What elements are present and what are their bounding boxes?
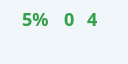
- staticText: 4: [87, 7, 98, 32]
- staticText: 0: [64, 7, 75, 32]
- staticText: 5%: [22, 7, 49, 32]
